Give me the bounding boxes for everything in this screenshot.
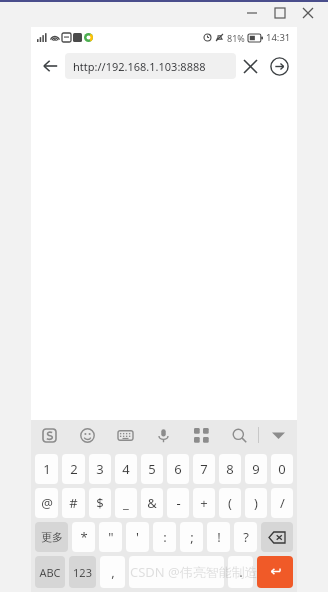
button[interactable]: " (99, 522, 122, 552)
button[interactable]: 0 (271, 454, 293, 484)
button[interactable]: . (228, 556, 253, 588)
button[interactable]: Back (35, 51, 65, 81)
button[interactable]: Keyboard layout (106, 420, 144, 450)
button[interactable]: ABC (35, 556, 65, 588)
button[interactable]: @ (35, 488, 58, 518)
staticText: 2 (70, 460, 78, 478)
button[interactable]: ; (180, 522, 203, 552)
staticText: ' (136, 528, 139, 546)
button[interactable]: ' (126, 522, 149, 552)
staticText: @ (41, 494, 53, 512)
button[interactable]: Voice input (144, 420, 182, 450)
staticText: - (176, 494, 181, 512)
staticText: CSDN @伟亮智能制造 (130, 563, 258, 581)
button[interactable]: : (153, 522, 176, 552)
button[interactable]: Apps (182, 420, 220, 450)
staticText: 0 (278, 460, 286, 478)
staticText: ) (254, 494, 258, 512)
staticText: ( (228, 494, 232, 512)
button[interactable]: , (100, 556, 125, 588)
staticText: _ (123, 494, 129, 512)
button[interactable]: ( (219, 488, 241, 518)
button[interactable]: Go (264, 51, 294, 81)
staticText: / (280, 494, 285, 512)
staticText: ABC (39, 565, 61, 580)
staticText: 123 (73, 565, 92, 580)
staticText: ? (243, 528, 249, 546)
button[interactable]: ) (245, 488, 267, 518)
staticText: 更多 (41, 530, 63, 544)
staticText: * (80, 528, 88, 546)
button[interactable]: Sogou (31, 420, 68, 450)
staticText: ! (217, 528, 221, 546)
button[interactable]: - (167, 488, 189, 518)
button[interactable]: / (271, 488, 293, 518)
button[interactable]: Clear (236, 52, 264, 80)
staticText: . (239, 563, 243, 581)
staticText: http://192.168.1.103:8888 (73, 59, 206, 74)
button[interactable]: Hide keyboard (259, 420, 297, 450)
button[interactable]: * (72, 522, 95, 552)
button[interactable]: 2 (62, 454, 85, 484)
staticText: 3 (96, 460, 104, 478)
staticText: + (200, 494, 208, 512)
button[interactable]: $ (89, 488, 111, 518)
staticText: ; (190, 528, 194, 546)
button[interactable]: ! (207, 522, 230, 552)
staticText: 4 (122, 460, 130, 478)
staticText: 6 (174, 460, 182, 478)
button[interactable]: & (141, 488, 163, 518)
staticText: 9 (252, 460, 260, 478)
staticText: & (147, 494, 157, 512)
button[interactable]: + (193, 488, 215, 518)
button[interactable]: # (62, 488, 85, 518)
staticText: 1 (43, 460, 51, 478)
button[interactable]: 7 (193, 454, 215, 484)
button[interactable]: Backspace (261, 522, 293, 552)
button[interactable] (129, 556, 224, 588)
staticText: 7 (200, 460, 208, 478)
button[interactable]: 1 (35, 454, 58, 484)
button[interactable]: 4 (115, 454, 137, 484)
staticText: , (111, 563, 115, 581)
button[interactable]: http://192.168.1.103:8888 (65, 53, 236, 79)
staticText: : (163, 528, 167, 546)
button[interactable]: ? (234, 522, 257, 552)
button[interactable]: 123 (69, 556, 96, 588)
button[interactable]: Minimize (238, 2, 266, 24)
button[interactable]: Enter (257, 556, 293, 588)
button[interactable]: Emoji (68, 420, 106, 450)
button[interactable]: 5 (141, 454, 163, 484)
staticText: 14:31 (266, 31, 291, 44)
staticText: # (69, 494, 78, 512)
staticText: $ (96, 494, 104, 512)
staticText: " (108, 528, 114, 546)
button[interactable]: 更多 (35, 522, 68, 552)
button[interactable]: Search (220, 420, 258, 450)
button[interactable]: Close (294, 2, 322, 24)
button[interactable]: 6 (167, 454, 189, 484)
button[interactable]: Maximize (266, 2, 294, 24)
button[interactable]: 3 (89, 454, 111, 484)
staticText: 81% (227, 32, 245, 44)
button[interactable]: 9 (245, 454, 267, 484)
button[interactable]: _ (115, 488, 137, 518)
staticText: 5 (148, 460, 156, 478)
button[interactable]: 8 (219, 454, 241, 484)
staticText: 8 (226, 460, 234, 478)
